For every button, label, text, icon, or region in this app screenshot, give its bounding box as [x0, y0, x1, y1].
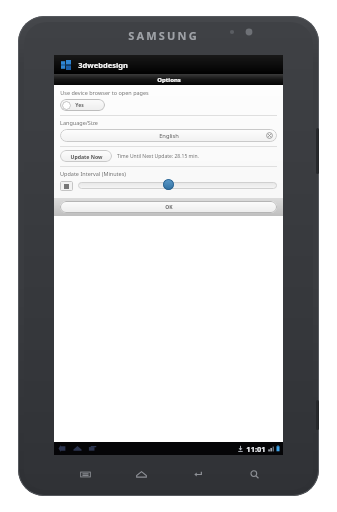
button[interactable] — [60, 181, 73, 191]
staticText: OK — [165, 204, 173, 211]
button[interactable]: Search — [249, 469, 260, 480]
button[interactable]: Back — [58, 444, 67, 453]
button[interactable]: Home — [136, 469, 147, 480]
other: Clear selection — [266, 132, 273, 139]
staticText: Update Now — [70, 153, 103, 160]
button[interactable]: English — [60, 129, 277, 142]
button[interactable]: Yes — [60, 99, 105, 111]
staticText: Use device browser to open pages — [60, 89, 149, 96]
button[interactable]: 3dwebdesign — [54, 55, 283, 74]
staticText: Time Until Next Update: 28.15 min. — [117, 153, 199, 160]
staticText: 11:01 — [246, 444, 266, 454]
staticText: SAMSUNG — [128, 28, 199, 43]
button[interactable]: OK — [60, 201, 277, 213]
staticText: Yes — [75, 102, 84, 109]
staticText: English — [159, 132, 179, 140]
staticText: Language/Size — [60, 119, 98, 126]
button[interactable]: Update interval slider — [163, 179, 174, 190]
button[interactable]: Update Now — [60, 150, 112, 162]
button[interactable] — [78, 182, 277, 189]
button[interactable]: Recent apps — [88, 444, 97, 453]
button[interactable]: Home — [73, 444, 82, 453]
staticText: Update Interval (Minutes) — [60, 170, 126, 177]
staticText: Options — [157, 76, 181, 84]
button[interactable]: Menu — [80, 469, 91, 480]
staticText: 3dwebdesign — [78, 60, 128, 70]
button[interactable]: Back — [193, 469, 204, 480]
